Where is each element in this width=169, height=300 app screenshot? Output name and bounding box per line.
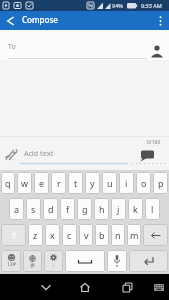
button[interactable]: t [68, 172, 83, 194]
button[interactable]: g [77, 198, 92, 220]
button[interactable] [34, 274, 57, 300]
button[interactable]: 拼 [23, 250, 42, 272]
staticText: z [33, 229, 38, 241]
button[interactable]: f [60, 198, 75, 220]
staticText: j [117, 203, 120, 215]
button[interactable] [107, 250, 127, 272]
staticText: v [84, 229, 89, 241]
button[interactable]: 12# [1, 250, 21, 272]
staticText: r [57, 177, 61, 189]
button[interactable]: r [51, 172, 66, 194]
staticText: c [67, 229, 72, 241]
staticText: i [125, 177, 128, 189]
button[interactable]: , [44, 250, 63, 272]
staticText: k [133, 203, 138, 215]
button[interactable] [151, 11, 169, 30]
staticText: e [39, 177, 45, 189]
button[interactable]: b [95, 224, 109, 246]
button[interactable]: c [62, 224, 77, 246]
button[interactable]: k [128, 198, 143, 220]
button[interactable] [129, 250, 168, 272]
button[interactable] [143, 224, 168, 246]
staticText: b [99, 229, 105, 241]
button[interactable]: m [127, 224, 141, 246]
staticText: h [99, 203, 105, 215]
staticText: s [31, 203, 36, 215]
button[interactable]: s [26, 198, 41, 220]
button[interactable]: v [79, 224, 93, 246]
staticText: o [141, 177, 147, 189]
button[interactable]: a [9, 198, 24, 220]
button[interactable]: p [153, 172, 168, 194]
button[interactable]: q [1, 172, 15, 194]
staticText: 0/160 [147, 139, 161, 146]
staticText: Compose [22, 14, 58, 25]
button[interactable]: To [0, 30, 169, 60]
staticText: w [21, 177, 29, 189]
button[interactable]: j [111, 198, 126, 220]
button[interactable]: l [145, 198, 160, 220]
button[interactable]: z [28, 224, 43, 246]
button[interactable]: e [34, 172, 49, 194]
staticText: n [115, 229, 121, 241]
button[interactable]: h [94, 198, 109, 220]
button[interactable]: y [85, 172, 100, 194]
button[interactable]: i [119, 172, 134, 194]
staticText: m [130, 229, 139, 241]
staticText: y [90, 177, 95, 189]
button[interactable] [65, 250, 105, 272]
button[interactable] [1, 224, 26, 246]
staticText: x [50, 229, 55, 241]
staticText: q [5, 177, 11, 189]
button[interactable]: u [102, 172, 117, 194]
staticText: Add text [24, 148, 54, 158]
button[interactable]: Add text [20, 145, 130, 165]
button[interactable]: o [136, 172, 151, 194]
button[interactable]: w [17, 172, 32, 194]
staticText: 94% [112, 2, 123, 9]
button[interactable] [149, 274, 169, 300]
staticText: l [151, 203, 154, 215]
button[interactable] [139, 149, 155, 163]
staticText: p [158, 177, 164, 189]
staticText: f [66, 203, 70, 215]
button[interactable] [73, 274, 96, 300]
button[interactable] [0, 11, 19, 30]
staticText: 拼 [30, 262, 35, 268]
staticText: a [14, 203, 20, 215]
staticText: 12# [7, 261, 16, 268]
button[interactable]: x [45, 224, 60, 246]
staticText: , [53, 261, 55, 268]
button[interactable]: n [111, 224, 125, 246]
staticText: To [8, 42, 16, 52]
staticText: u [107, 177, 113, 189]
staticText: t [74, 177, 78, 189]
staticText: 9:33 AM [141, 2, 162, 9]
staticText: d [48, 203, 54, 215]
staticText: g [82, 203, 88, 215]
button[interactable] [116, 274, 139, 300]
button[interactable]: d [43, 198, 58, 220]
